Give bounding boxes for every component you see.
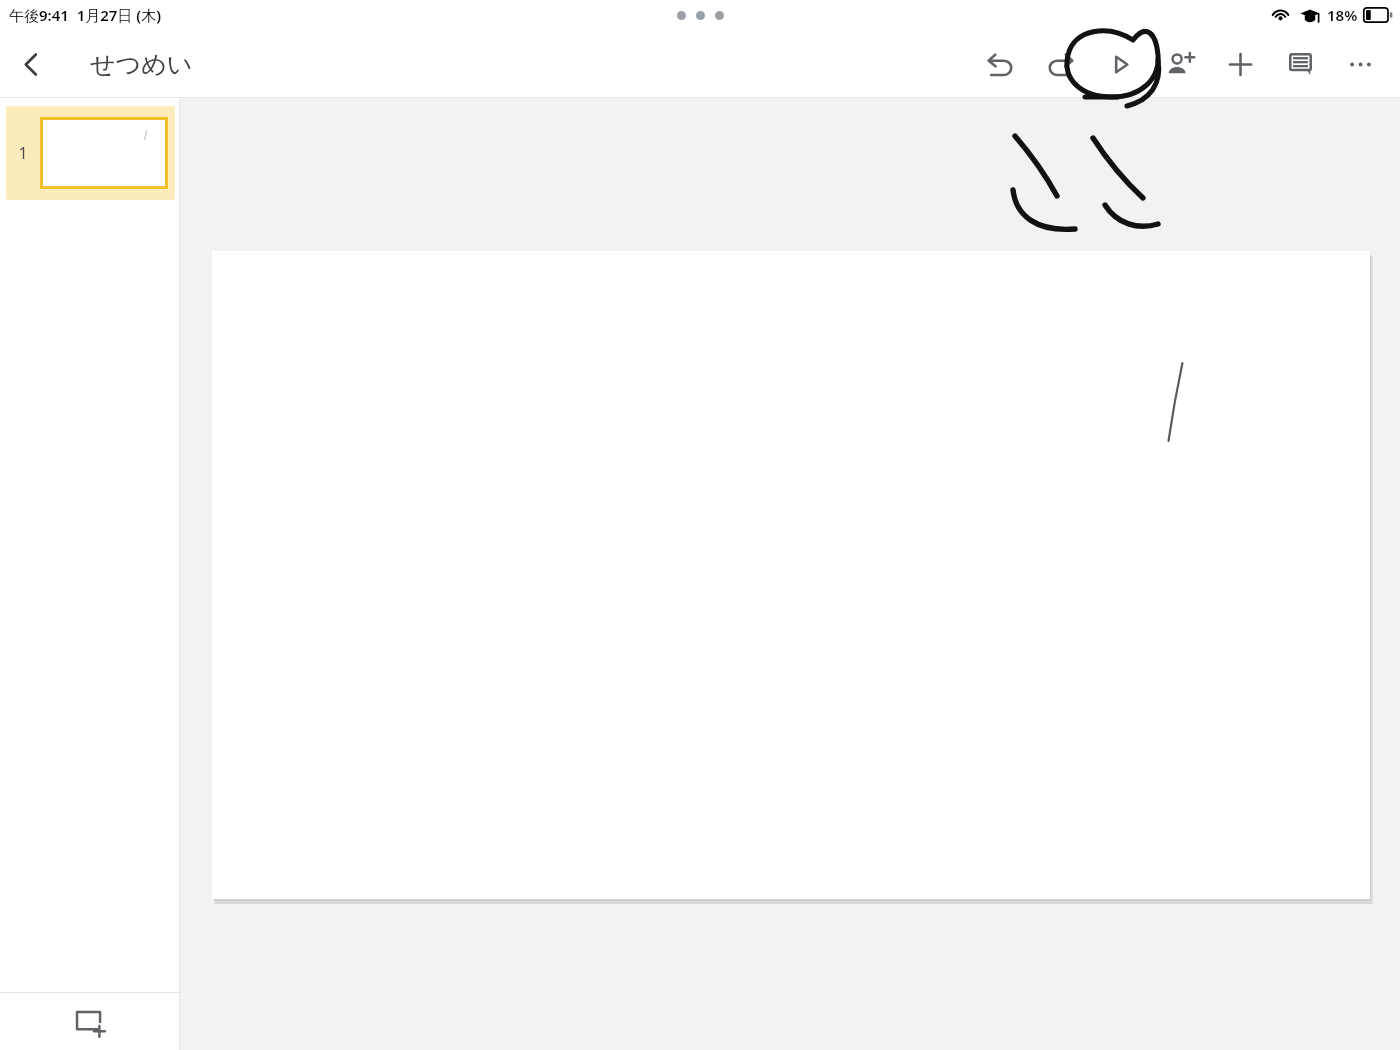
staticText: 午後9:41 1月27日 (木) bbox=[9, 5, 162, 25]
button[interactable]: Add people bbox=[1154, 38, 1206, 90]
button[interactable]: せつめい bbox=[90, 49, 193, 80]
button[interactable]: Undo bbox=[974, 38, 1026, 90]
staticText: 18% bbox=[1327, 5, 1358, 25]
button[interactable]: Add slide bbox=[0, 993, 179, 1050]
staticText: 1 bbox=[18, 142, 28, 164]
button[interactable]: More options bbox=[1334, 38, 1386, 90]
button[interactable]: Back bbox=[0, 33, 62, 95]
button[interactable]: Insert bbox=[1214, 38, 1266, 90]
button[interactable]: Present bbox=[1094, 38, 1146, 90]
button[interactable]: 1 bbox=[6, 106, 175, 200]
button[interactable]: Redo bbox=[1034, 38, 1086, 90]
staticText: せつめい bbox=[90, 49, 193, 80]
button[interactable]: Comments bbox=[1274, 38, 1326, 90]
